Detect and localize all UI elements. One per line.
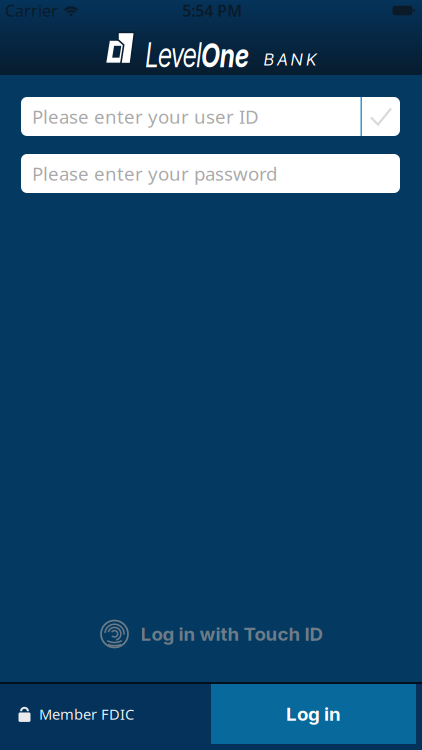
staticText: Log in [286,703,341,725]
staticText: A [277,49,287,70]
staticText: Level [128,35,202,75]
button[interactable]: Log in [211,684,416,744]
button[interactable]: Please enter your password [21,154,400,193]
button[interactable]: Log in with Touch ID [99,619,322,649]
staticText: K [306,49,316,70]
button[interactable]: Please enter your user ID [21,97,400,136]
staticText: Log in with Touch ID [140,623,322,645]
staticText: Member FDIC [39,704,134,724]
staticText: Carrier [5,0,58,21]
staticText: One [202,35,266,75]
staticText: Please enter your password [32,161,277,186]
staticText: 5:54 PM [182,0,242,21]
staticText: B [264,49,274,70]
staticText: Please enter your user ID [32,104,259,129]
staticText: N [291,49,303,70]
